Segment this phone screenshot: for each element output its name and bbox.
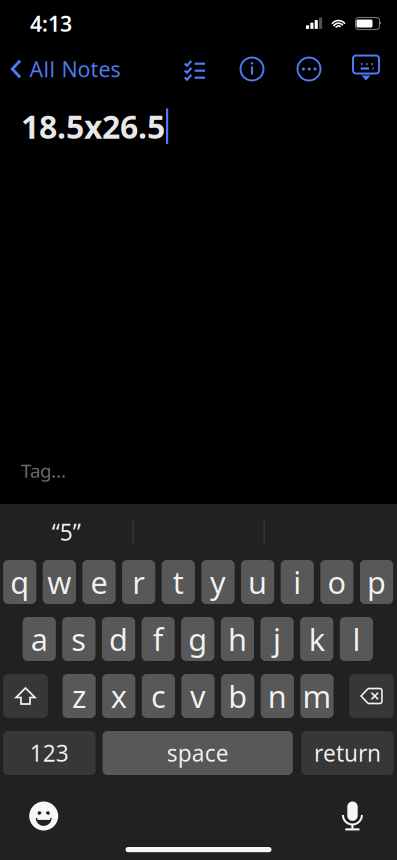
button[interactable]: q <box>3 560 36 604</box>
button[interactable]: n <box>261 674 294 718</box>
staticText: h <box>228 619 247 659</box>
staticText: g <box>188 619 207 659</box>
staticText: w <box>47 562 71 602</box>
staticText: k <box>309 619 325 659</box>
staticText: space <box>167 738 229 768</box>
button[interactable]: m <box>300 674 334 718</box>
button[interactable]: k <box>300 617 333 661</box>
button[interactable]: All Notes <box>0 47 126 91</box>
button[interactable]: t <box>162 560 195 604</box>
staticText: d <box>109 619 128 659</box>
button[interactable]: i <box>281 560 314 604</box>
staticText: u <box>248 562 267 602</box>
button[interactable]: e <box>82 560 116 604</box>
button[interactable]: u <box>241 560 274 604</box>
button[interactable]: y <box>201 560 235 604</box>
button[interactable]: Delete <box>349 674 394 718</box>
button[interactable]: Info <box>230 47 274 91</box>
button[interactable]: z <box>62 674 96 718</box>
button[interactable]: More <box>287 47 331 91</box>
staticText: j <box>273 619 281 659</box>
button[interactable]: p <box>360 560 393 604</box>
button[interactable]: r <box>122 560 155 604</box>
staticText: z <box>72 676 86 716</box>
staticText: Tag... <box>21 458 66 483</box>
staticText: o <box>327 562 346 602</box>
staticText: c <box>151 676 166 716</box>
button[interactable]: Hide keyboard <box>344 47 388 91</box>
button[interactable]: j <box>260 617 294 661</box>
staticText: q <box>10 562 29 602</box>
staticText: i <box>293 562 301 602</box>
button[interactable]: o <box>320 560 353 604</box>
staticText: e <box>90 562 107 602</box>
staticText: p <box>367 562 386 602</box>
staticText: 4:13 <box>30 9 72 38</box>
button[interactable]: “5” <box>0 510 132 554</box>
button[interactable]: Shift <box>3 674 48 718</box>
staticText: x <box>111 676 127 716</box>
button[interactable]: Checklist <box>173 47 217 91</box>
staticText: t <box>173 562 184 602</box>
button[interactable]: v <box>181 674 215 718</box>
button[interactable]: s <box>62 617 95 661</box>
button[interactable]: a <box>23 617 56 661</box>
staticText: n <box>268 676 287 716</box>
staticText: m <box>302 676 331 716</box>
staticText: All Notes <box>29 55 120 83</box>
button[interactable]: f <box>142 617 175 661</box>
staticText: s <box>71 619 86 659</box>
staticText: 123 <box>30 738 69 768</box>
staticText: 18.5x26.5 <box>21 105 165 147</box>
staticText: a <box>31 619 48 659</box>
button[interactable]: c <box>142 674 175 718</box>
button[interactable]: Dictation <box>329 793 375 839</box>
button[interactable]: x <box>102 674 135 718</box>
staticText: r <box>132 562 145 602</box>
staticText: return <box>314 738 381 768</box>
button[interactable]: g <box>181 617 214 661</box>
button[interactable]: 123 <box>3 731 96 775</box>
button[interactable]: l <box>340 617 373 661</box>
staticText: v <box>190 676 206 716</box>
button[interactable]: h <box>221 617 254 661</box>
staticText: b <box>228 676 247 716</box>
button[interactable]: return <box>301 731 394 775</box>
staticText: l <box>352 619 360 659</box>
button[interactable]: d <box>102 617 135 661</box>
button[interactable]: space <box>102 731 293 775</box>
staticText: y <box>210 562 226 602</box>
button[interactable]: Emoji keyboard <box>21 793 67 839</box>
staticText: “5” <box>52 517 81 547</box>
button[interactable]: w <box>43 560 76 604</box>
button[interactable]: b <box>221 674 254 718</box>
staticText: f <box>153 619 164 659</box>
